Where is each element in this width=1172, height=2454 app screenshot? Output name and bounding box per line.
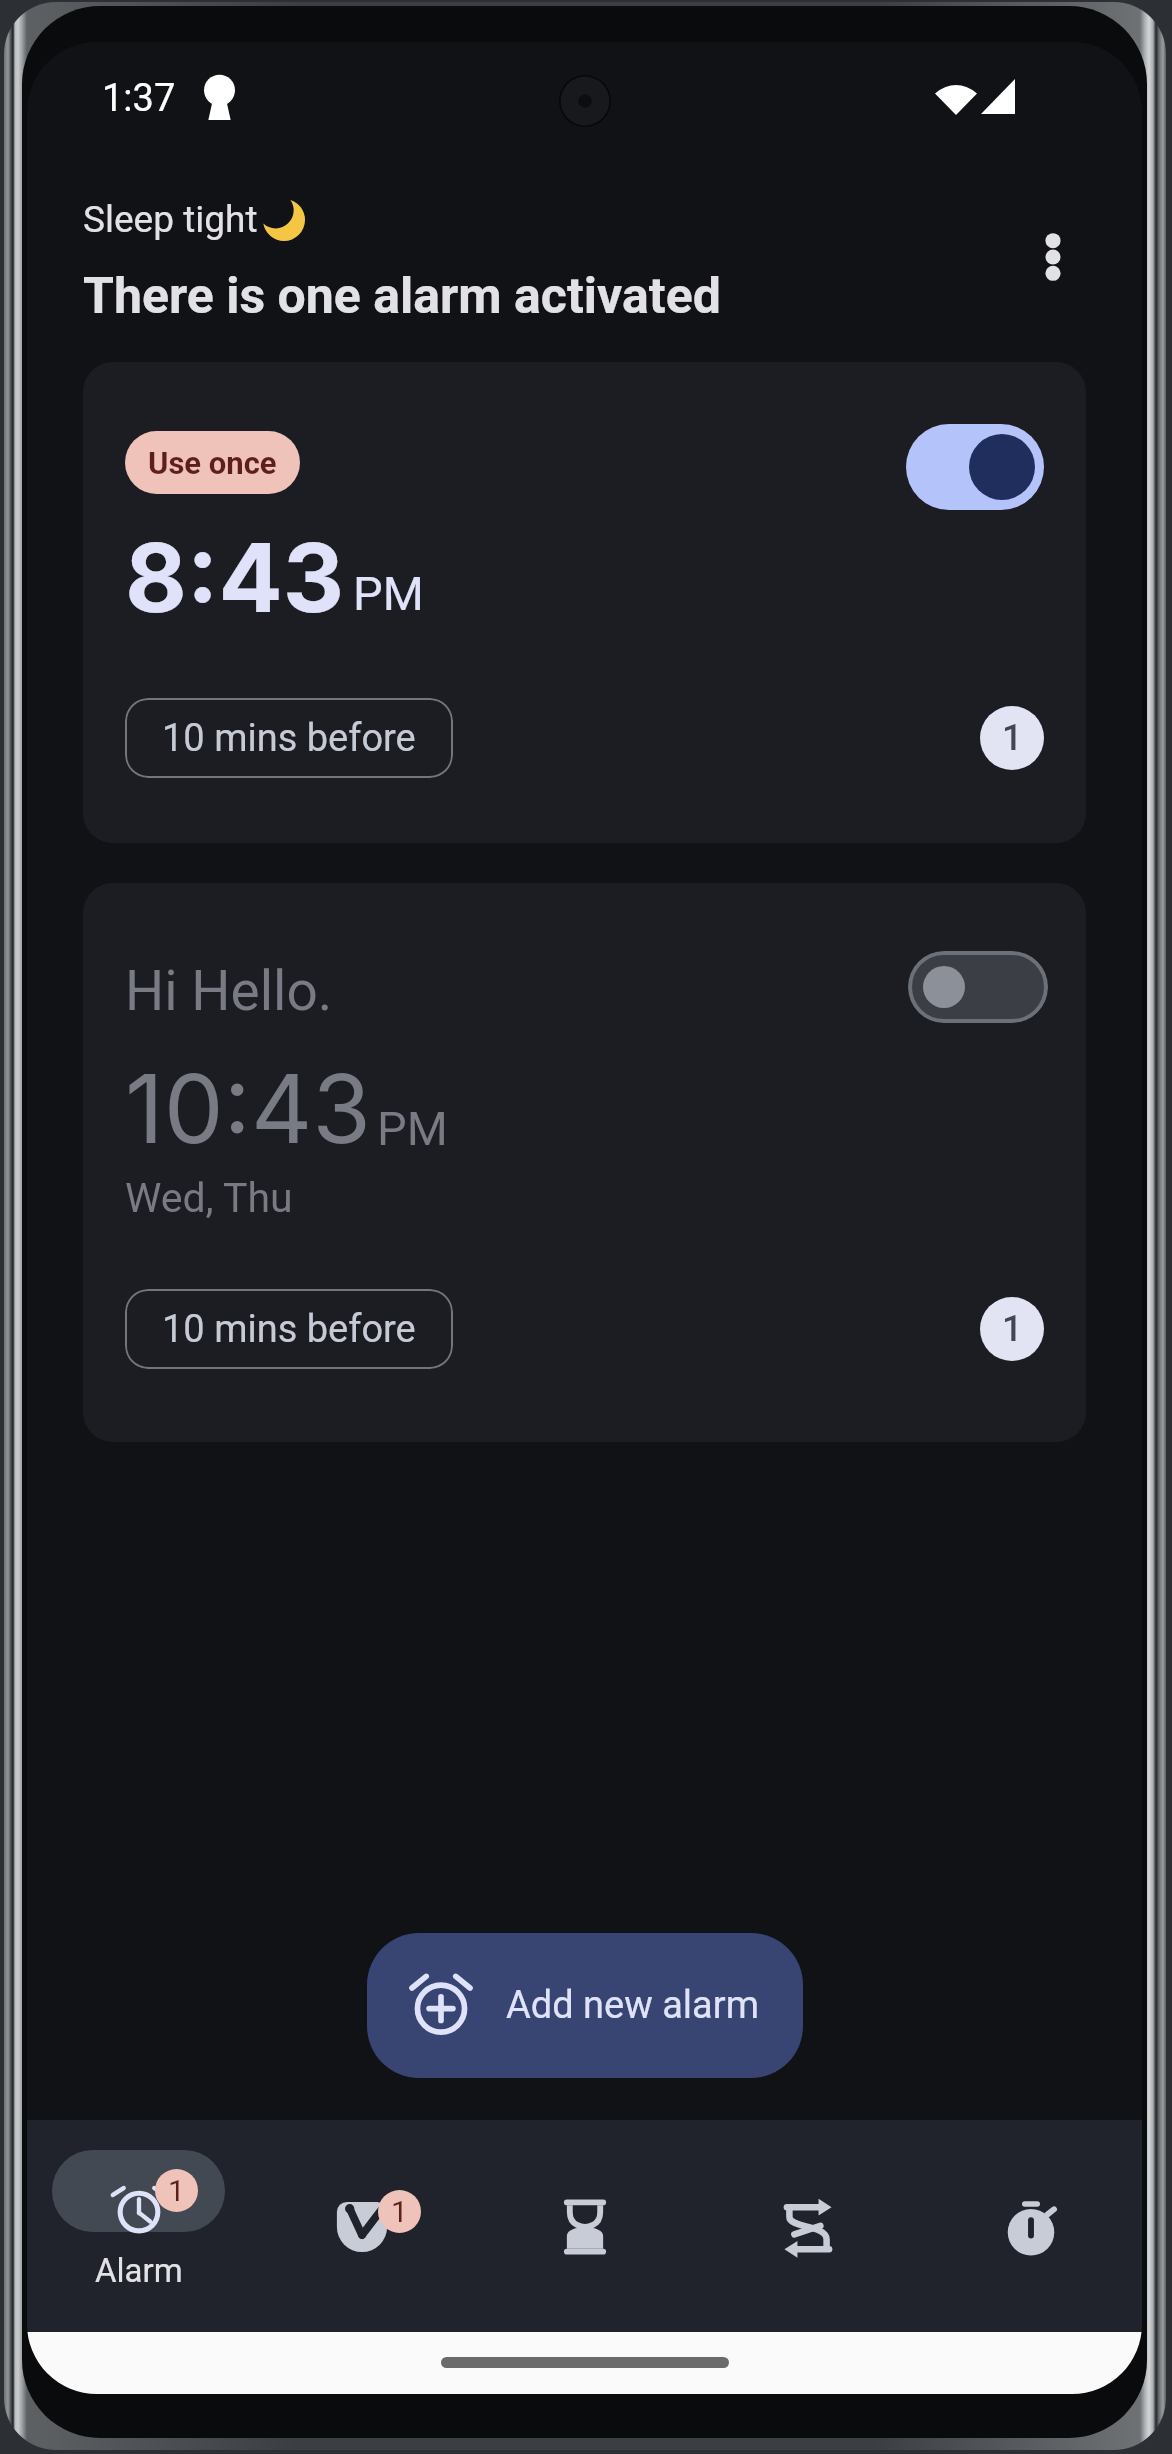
- staticText: 10 mins before: [162, 716, 416, 761]
- button[interactable]: Stopwatch: [919, 2120, 1142, 2332]
- staticText: Add new alarm: [506, 1983, 759, 2028]
- staticText: Sleep tight: [83, 198, 258, 241]
- staticText: PM: [377, 1101, 448, 1156]
- staticText: There is one alarm activated: [83, 267, 721, 326]
- staticText: 1:37: [102, 76, 176, 121]
- staticText: 1: [168, 2173, 185, 2208]
- button[interactable]: Alarm disabled: [908, 951, 1048, 1023]
- staticText: 8:43: [125, 520, 345, 635]
- staticText: Alarm: [95, 2251, 183, 2290]
- staticText: 1: [1002, 717, 1023, 759]
- staticText: Hi Hello.: [125, 959, 333, 1023]
- button[interactable]: 1: [27, 2120, 250, 2332]
- button[interactable]: Time converter: [696, 2120, 919, 2332]
- staticText: 10:43: [125, 1051, 371, 1166]
- staticText: 1: [391, 2194, 408, 2229]
- button[interactable]: Use once: [83, 362, 1086, 843]
- staticText: 10 mins before: [162, 1307, 416, 1352]
- staticText: Wed, Thu: [125, 1174, 293, 1222]
- button[interactable]: Timer: [473, 2120, 696, 2332]
- button[interactable]: Hi Hello.: [83, 883, 1086, 1442]
- button[interactable]: 10 mins before: [125, 698, 453, 778]
- button[interactable]: 10 mins before: [125, 1289, 453, 1369]
- staticText: PM: [353, 566, 424, 621]
- staticText: 1: [1002, 1308, 1023, 1350]
- button[interactable]: More options: [1011, 215, 1095, 299]
- button[interactable]: Add new alarm: [367, 1933, 803, 2078]
- button[interactable]: Alarm enabled: [906, 424, 1044, 510]
- button[interactable]: Reminders: [250, 2120, 473, 2332]
- staticText: Use once: [148, 445, 277, 481]
